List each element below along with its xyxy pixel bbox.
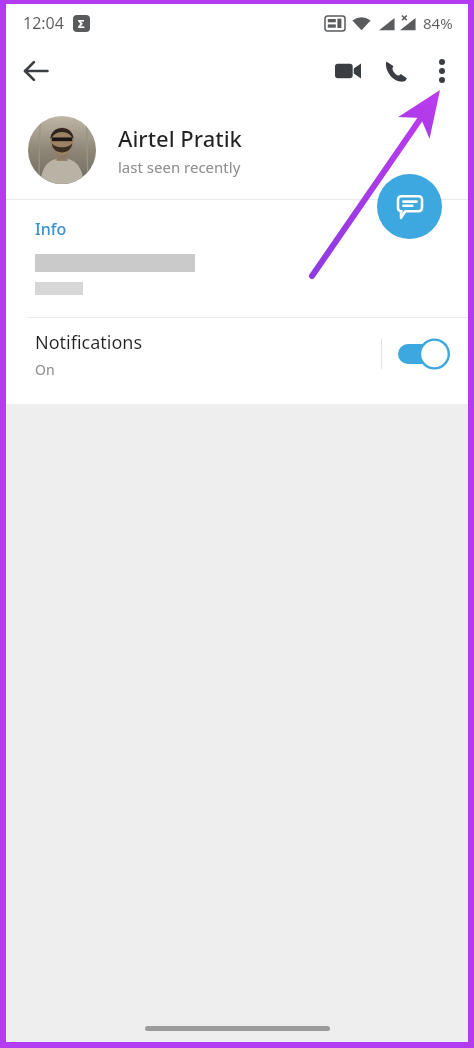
staticText: Notifications <box>35 330 143 355</box>
button[interactable]: Call <box>372 47 420 95</box>
button[interactable]: More options <box>420 49 464 93</box>
button[interactable]: Back <box>12 47 60 95</box>
button[interactable]: Airtel Pratik <box>6 100 468 199</box>
button[interactable]: Video call <box>324 47 372 95</box>
button[interactable]: Send message <box>377 174 442 239</box>
button[interactable]: Info <box>6 200 468 317</box>
staticText: Σ <box>78 16 85 31</box>
staticText: 12:04 <box>23 12 64 34</box>
button[interactable]: Notifications <box>6 318 468 390</box>
staticText: Airtel Pratik <box>118 123 242 153</box>
staticText: Info <box>35 218 67 240</box>
button[interactable]: Notifications toggle <box>398 338 450 370</box>
staticText: On <box>35 360 55 379</box>
staticText: 84% <box>423 13 453 33</box>
staticText: last seen recently <box>118 157 241 177</box>
